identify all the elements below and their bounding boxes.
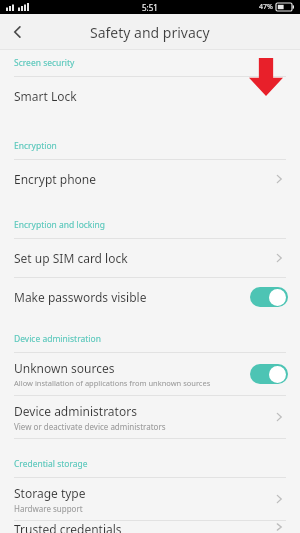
staticText: Device administration bbox=[14, 333, 101, 345]
staticText: Trusted credentials bbox=[14, 521, 122, 533]
button[interactable]: Make passwords visible bbox=[0, 278, 300, 316]
staticText: Set up SIM card lock bbox=[14, 250, 272, 266]
staticText: Encrypt phone bbox=[14, 171, 272, 187]
staticText: Credential storage bbox=[14, 458, 88, 470]
button[interactable]: Back bbox=[0, 14, 36, 50]
staticText: Safety and privacy bbox=[90, 23, 210, 42]
staticText: Encryption and locking bbox=[14, 219, 106, 231]
staticText: Smart Lock bbox=[14, 88, 286, 104]
button[interactable]: Encrypt phone bbox=[0, 160, 300, 198]
button[interactable]: Toggle on bbox=[250, 364, 288, 384]
staticText: Unknown sources bbox=[14, 360, 115, 376]
staticText: 47% bbox=[259, 2, 273, 12]
button[interactable]: Device administrators bbox=[0, 396, 300, 438]
staticText: Allow installation of applications from … bbox=[14, 378, 211, 388]
staticText: 5:51 bbox=[142, 2, 158, 13]
staticText: Device administrators bbox=[14, 403, 137, 419]
button[interactable]: Smart Lock bbox=[0, 77, 300, 115]
staticText: Storage type bbox=[14, 485, 86, 501]
button[interactable]: Set up SIM card lock bbox=[0, 239, 300, 277]
staticText: Make passwords visible bbox=[14, 289, 147, 305]
button[interactable]: Trusted credentials bbox=[0, 521, 300, 533]
staticText: Encryption bbox=[14, 140, 57, 152]
button[interactable]: Toggle on bbox=[250, 287, 288, 307]
staticText: View or deactivate device administrators bbox=[14, 421, 166, 432]
staticText: Hardware support bbox=[14, 503, 83, 514]
staticText: Screen security bbox=[14, 57, 75, 69]
button[interactable]: Unknown sources bbox=[0, 353, 300, 395]
button[interactable]: Storage type bbox=[0, 478, 300, 520]
